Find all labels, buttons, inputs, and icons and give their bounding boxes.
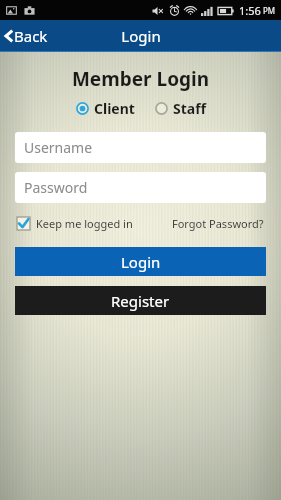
- staticText: Back: [14, 26, 48, 46]
- button[interactable]: Username: [15, 132, 266, 163]
- staticText: Password: [24, 178, 88, 197]
- button[interactable]: Register: [15, 286, 266, 315]
- staticText: Login: [121, 252, 161, 272]
- button[interactable]: Keep me logged in: [17, 214, 133, 233]
- staticText: PM: [263, 5, 276, 16]
- staticText: Staff: [173, 99, 206, 118]
- button[interactable]: Login: [15, 247, 266, 276]
- staticText: Username: [24, 138, 93, 157]
- button[interactable]: Forgot Password?: [172, 214, 264, 233]
- button[interactable]: Back: [0, 21, 56, 51]
- staticText: Register: [111, 291, 170, 311]
- staticText: Client: [94, 99, 135, 118]
- button[interactable]: Staff: [153, 97, 208, 120]
- staticText: Login: [121, 26, 161, 46]
- button[interactable]: Client: [74, 97, 137, 120]
- button[interactable]: Password: [15, 172, 266, 203]
- staticText: 1:56: [239, 3, 261, 18]
- staticText: Keep me logged in: [36, 216, 133, 231]
- staticText: Forgot Password?: [172, 216, 264, 231]
- staticText: Member Login: [0, 66, 281, 92]
